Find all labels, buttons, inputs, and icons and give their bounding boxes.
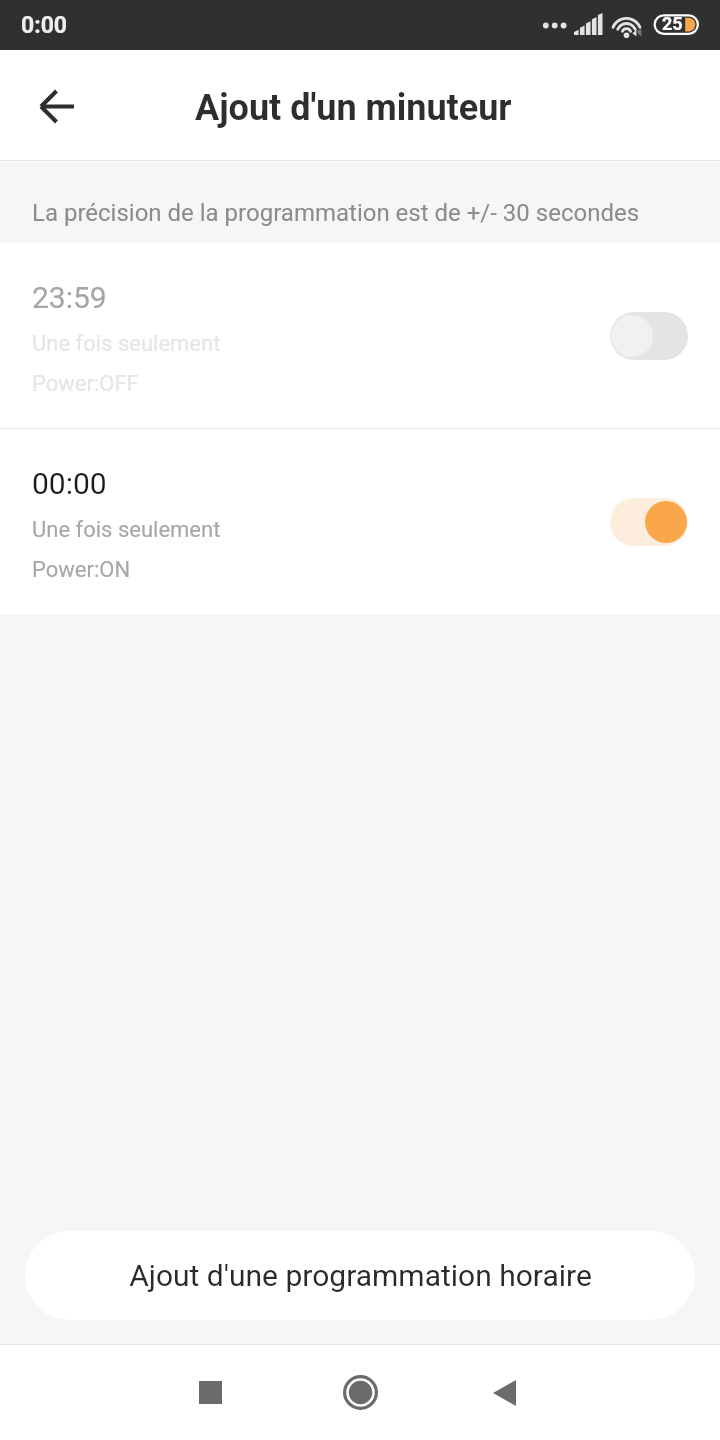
staticText: Power:OFF bbox=[32, 371, 139, 397]
button[interactable]: 00:00 bbox=[0, 429, 720, 614]
staticText: 00:00 bbox=[32, 466, 107, 501]
staticText: Une fois seulement bbox=[32, 517, 221, 543]
staticText: Power:ON bbox=[32, 557, 131, 583]
staticText: La précision de la programmation est de … bbox=[32, 199, 640, 227]
staticText: Une fois seulement bbox=[32, 331, 221, 357]
staticText: Ajout d'un minuteur bbox=[195, 87, 512, 129]
button[interactable]: Back bbox=[469, 1357, 540, 1428]
button[interactable]: Timer on bbox=[610, 498, 688, 546]
staticText: 0:00 bbox=[21, 12, 68, 39]
button[interactable]: Ajout d'une programmation horaire bbox=[25, 1231, 695, 1320]
staticText: Ajout d'une programmation horaire bbox=[129, 1258, 592, 1293]
staticText: 23:59 bbox=[32, 280, 107, 315]
button[interactable]: Recents bbox=[175, 1357, 246, 1428]
staticText: 25 bbox=[662, 13, 683, 34]
button[interactable]: Timer off bbox=[610, 312, 688, 360]
button[interactable]: Home bbox=[325, 1357, 396, 1428]
button[interactable]: Back bbox=[30, 79, 84, 133]
button[interactable]: 23:59 bbox=[0, 243, 720, 428]
